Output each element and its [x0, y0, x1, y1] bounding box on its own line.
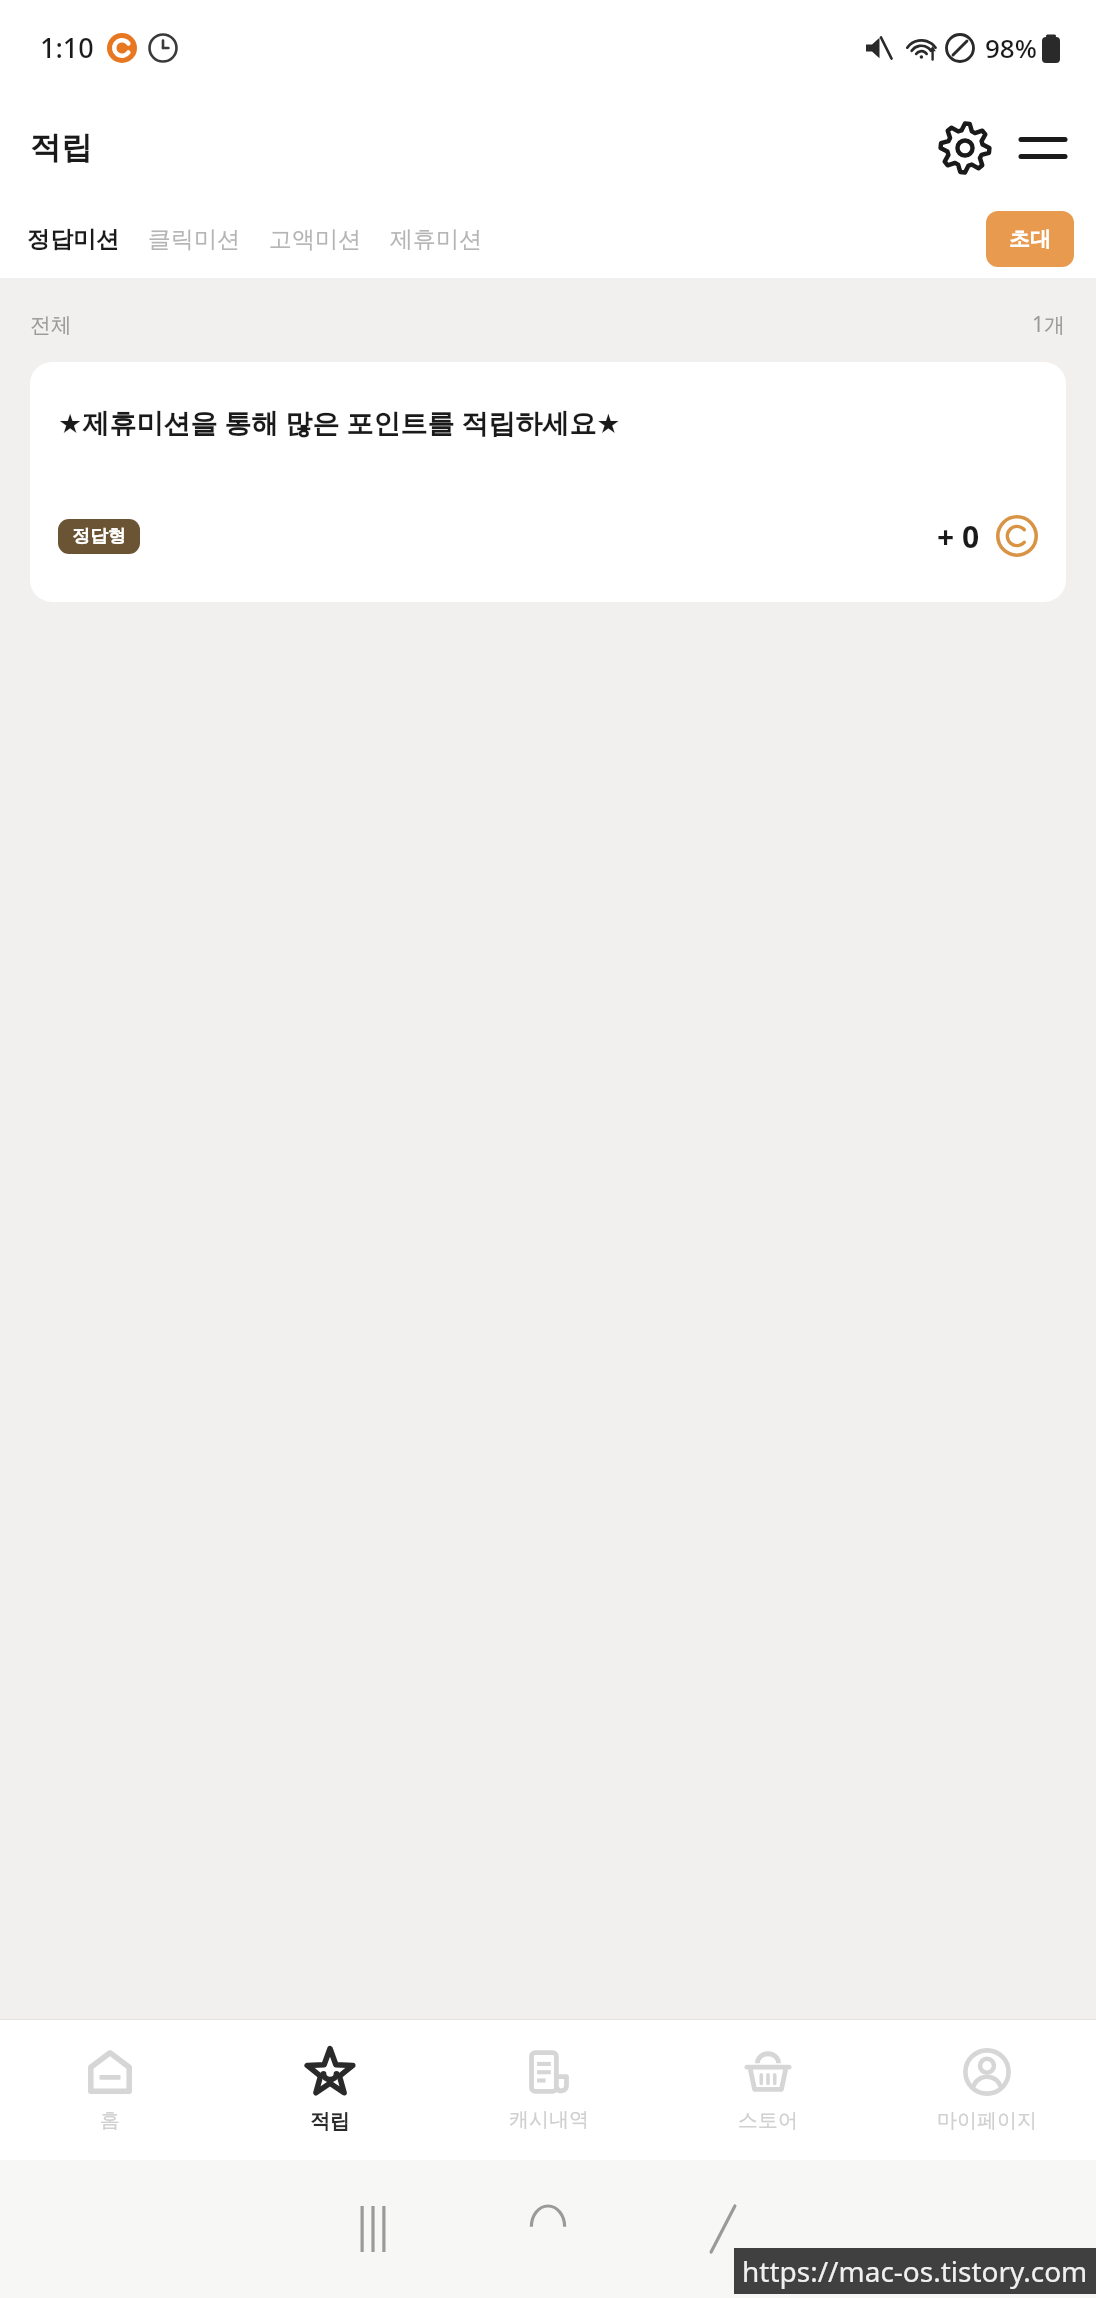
button[interactable]: 초대: [986, 211, 1074, 267]
staticText: 스토어: [738, 2108, 798, 2133]
button[interactable]: 클릭미션: [148, 219, 240, 260]
staticText: 적립: [30, 128, 92, 167]
staticText: 제휴미션: [390, 225, 482, 254]
button[interactable]: 고액미션: [269, 219, 361, 260]
staticText: 98%: [985, 30, 1037, 65]
button[interactable]: Settings: [934, 117, 996, 179]
button[interactable]: 스토어: [658, 2020, 877, 2160]
staticText: https://mac-os.tistory.com: [742, 2252, 1088, 2290]
button[interactable]: 홈: [0, 2020, 220, 2160]
staticText: 홈: [100, 2108, 120, 2133]
staticText: 전체: [30, 312, 72, 338]
staticText: 클릭미션: [148, 225, 240, 254]
staticText: 정답형: [72, 525, 126, 548]
button[interactable]: 정답미션: [27, 219, 119, 260]
button[interactable]: 제휴미션: [390, 219, 482, 260]
staticText: 초대: [1009, 226, 1051, 252]
staticText: 1:10: [40, 29, 94, 66]
staticText: 캐시내역: [509, 2107, 589, 2132]
staticText: + 0: [937, 516, 980, 557]
button[interactable]: Menu: [1012, 117, 1074, 179]
button[interactable]: 캐시내역: [439, 2020, 658, 2160]
staticText: 적립: [310, 2109, 350, 2134]
staticText: 정답미션: [27, 225, 119, 254]
button[interactable]: 마이페이지: [877, 2020, 1096, 2160]
staticText: 1개: [1032, 310, 1066, 339]
staticText: 마이페이지: [937, 2108, 1037, 2133]
button[interactable]: ★제휴미션을 통해 많은 포인트를 적립하세요★: [30, 362, 1066, 602]
staticText: ★제휴미션을 통해 많은 포인트를 적립하세요★: [58, 404, 621, 441]
button[interactable]: 적립: [220, 2020, 439, 2160]
staticText: 고액미션: [269, 225, 361, 254]
